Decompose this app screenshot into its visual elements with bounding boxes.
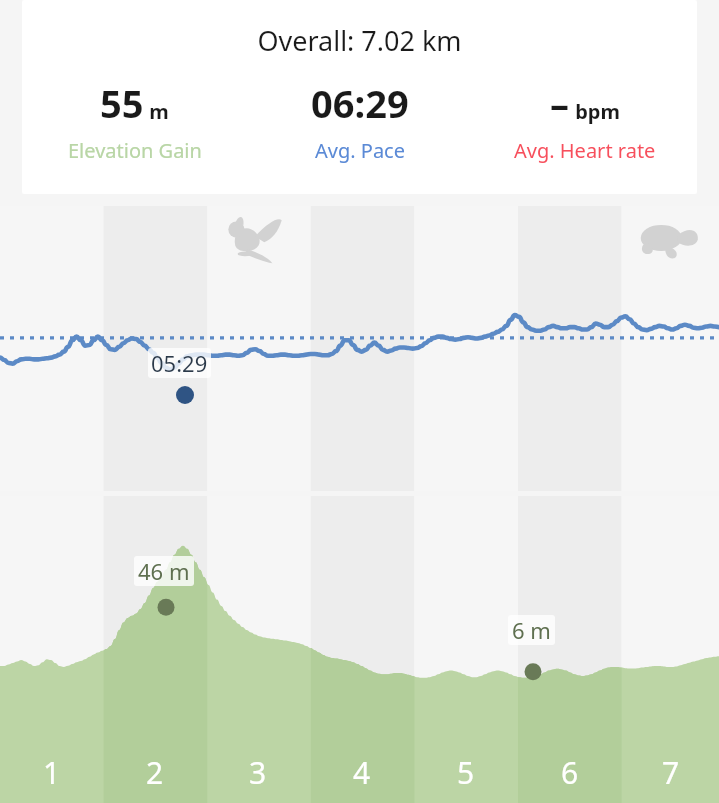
staticText: Overall: 7.02 km: [22, 22, 697, 59]
staticText: Avg. Heart rate: [514, 137, 656, 164]
staticText: 6 m: [512, 615, 551, 645]
button[interactable]: Pace chart: [0, 206, 719, 491]
staticText: 7: [662, 752, 680, 793]
staticText: 46 m: [138, 556, 190, 586]
staticText: 3: [249, 752, 267, 793]
staticText: Avg. Pace: [315, 137, 405, 164]
staticText: 2: [146, 752, 164, 793]
staticText: 05:29: [151, 348, 208, 378]
staticText: m: [144, 98, 169, 125]
staticText: 1: [43, 752, 61, 793]
button[interactable]: –: [472, 77, 697, 164]
button[interactable]: Overall: 7.02 km: [22, 0, 697, 194]
staticText: 5: [457, 752, 475, 793]
staticText: 4: [353, 752, 371, 793]
staticText: 6: [561, 752, 579, 793]
staticText: bpm: [570, 98, 620, 125]
button[interactable]: 55: [22, 77, 247, 164]
staticText: –: [550, 77, 570, 129]
staticText: 06:29: [311, 77, 409, 129]
button[interactable]: 06:29: [247, 77, 472, 164]
staticText: Elevation Gain: [68, 137, 202, 164]
button[interactable]: Elevation chart: [0, 496, 719, 803]
staticText: 55: [100, 77, 144, 129]
